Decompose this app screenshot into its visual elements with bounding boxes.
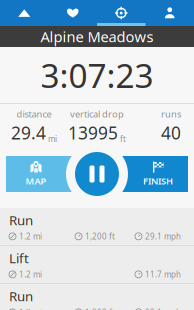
staticText: 1,200 ft bbox=[85, 231, 115, 242]
staticText: 40 bbox=[161, 121, 181, 144]
button[interactable]: MAP bbox=[6, 156, 96, 192]
staticText: 1.2 mi bbox=[19, 307, 42, 310]
staticText: 13995 bbox=[68, 121, 118, 144]
staticText: 11.7 mph bbox=[145, 269, 181, 280]
staticText: ft bbox=[120, 134, 126, 144]
button[interactable]: Track bbox=[97, 0, 145, 26]
button[interactable]: Profile bbox=[145, 0, 194, 26]
button[interactable]: FINISH bbox=[98, 156, 188, 192]
staticText: mi bbox=[48, 134, 57, 144]
button[interactable]: Resorts bbox=[0, 0, 48, 26]
staticText: Lift bbox=[9, 249, 29, 267]
staticText: Run bbox=[9, 287, 33, 305]
staticText: 29.1 mph bbox=[145, 231, 181, 242]
staticText: runs bbox=[161, 108, 181, 120]
staticText: distance bbox=[16, 108, 51, 120]
button[interactable]: Favorites bbox=[48, 0, 97, 26]
staticText: Alpine Meadows bbox=[40, 27, 153, 46]
staticText: 1.2 mi bbox=[19, 269, 42, 280]
staticText: vertical drop bbox=[70, 108, 124, 120]
staticText: MAP bbox=[25, 175, 46, 187]
staticText: 29.4 bbox=[11, 121, 46, 144]
staticText: 29.1 mph bbox=[145, 307, 181, 310]
staticText: 1,200 ft bbox=[85, 307, 115, 310]
staticText: FINISH bbox=[143, 175, 173, 187]
staticText: 3:07:23 bbox=[40, 53, 153, 97]
button[interactable]: Pause bbox=[75, 152, 119, 196]
staticText: Run bbox=[9, 211, 33, 229]
staticText: 1.2 mi bbox=[19, 231, 42, 242]
